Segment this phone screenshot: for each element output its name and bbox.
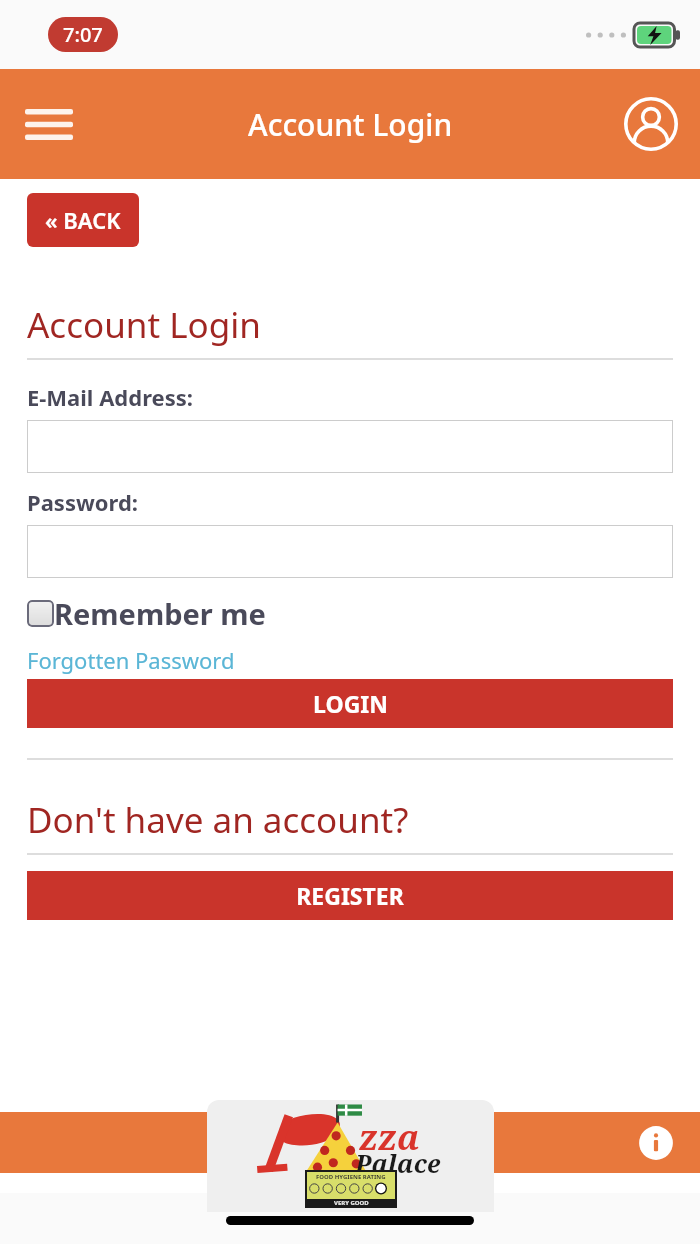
staticText: 7:07: [63, 21, 103, 48]
staticText: zza: [359, 1114, 420, 1160]
button[interactable]: « BACK: [27, 193, 139, 247]
staticText: E-Mail Address:: [27, 382, 193, 412]
staticText: Remember me: [54, 594, 266, 633]
button[interactable]: zza: [207, 1100, 494, 1212]
staticText: FOOD HYGIENE RATING: [316, 1173, 386, 1181]
staticText: « BACK: [45, 205, 121, 235]
button[interactable]: LOGIN: [27, 679, 673, 728]
staticText: VERY GOOD: [334, 1199, 369, 1206]
button[interactable]: Information: [634, 1121, 678, 1165]
button[interactable]: Remember me: [27, 594, 673, 633]
staticText: Don't have an account?: [27, 796, 409, 844]
button[interactable]: REGISTER: [27, 871, 673, 920]
staticText: Forgotten Password: [27, 645, 235, 675]
staticText: Account Login: [27, 301, 261, 349]
button[interactable]: Account: [620, 93, 682, 155]
staticText: LOGIN: [313, 688, 388, 719]
button[interactable]: Forgotten Password: [27, 645, 235, 675]
staticText: REGISTER: [296, 880, 404, 911]
button[interactable]: [27, 525, 673, 578]
staticText: Palace: [355, 1146, 441, 1180]
staticText: Password:: [27, 487, 138, 517]
button[interactable]: [27, 420, 673, 473]
button[interactable]: Menu: [18, 93, 80, 155]
staticText: Account Login: [248, 104, 453, 145]
